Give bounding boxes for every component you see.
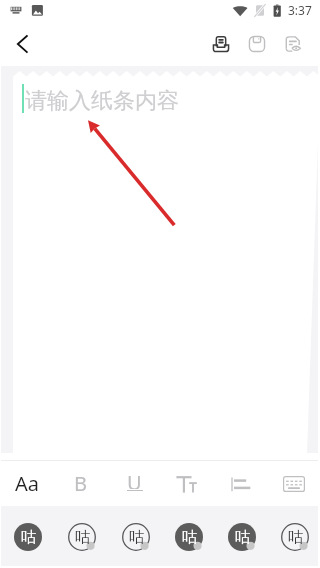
staticText: U: [127, 469, 142, 489]
button[interactable]: Back: [4, 26, 40, 62]
button[interactable]: Save: [239, 26, 275, 62]
button[interactable]: Bold: [54, 461, 108, 506]
button[interactable]: Sticker 1: [0, 506, 54, 568]
button[interactable]: Sticker 6: [267, 506, 320, 568]
staticText: 咕: [182, 528, 197, 547]
button[interactable]: Font: [0, 461, 54, 506]
button[interactable]: Sticker 4: [161, 506, 214, 568]
button[interactable]: Sticker 2: [54, 506, 108, 568]
staticText: 3:37: [288, 2, 312, 18]
button[interactable]: Underline: [108, 461, 161, 506]
staticText: 咕: [288, 528, 303, 547]
button[interactable]: Align: [214, 461, 267, 506]
staticText: 咕: [75, 528, 90, 547]
staticText: 咕: [21, 528, 36, 547]
staticText: B: [74, 470, 87, 497]
staticText: 咕: [235, 528, 250, 547]
button[interactable]: Sticker 3: [108, 506, 161, 568]
button[interactable]: Preview: [275, 26, 311, 62]
button[interactable]: Keyboard: [267, 461, 320, 506]
button[interactable]: Archive: [203, 26, 239, 62]
staticText: Aa: [15, 470, 39, 497]
button[interactable]: Sticker 5: [214, 506, 267, 568]
button[interactable]: Text size: [161, 461, 214, 506]
staticText: 咕: [129, 528, 144, 547]
staticText: 请输入纸条内容: [25, 87, 179, 115]
